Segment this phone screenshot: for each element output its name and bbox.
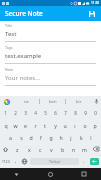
staticText: Your notes... [5,74,41,82]
staticText: Türkçe [49,159,61,164]
staticText: Secure Note [5,9,43,18]
staticText: n [72,146,76,153]
button[interactable]: ı [70,119,80,131]
button[interactable]: h [56,131,66,143]
button[interactable]: e [20,119,30,131]
button[interactable]: u [60,119,70,131]
staticText: v [50,146,53,153]
button[interactable]: j [66,131,76,143]
staticText: e [24,122,27,129]
button[interactable]: q [1,119,10,131]
button[interactable]: . [80,155,88,168]
button[interactable]: c [35,143,46,155]
staticText: ne [24,99,29,105]
staticText: 4 [34,110,37,116]
button[interactable]: ne [13,96,39,107]
staticText: o [83,122,87,129]
button[interactable]: Shift [0,143,11,155]
staticText: 7 [64,110,67,116]
staticText: t [44,122,46,129]
button[interactable]: 0 [90,107,100,119]
staticText: c [39,146,42,153]
button[interactable]: ben [40,96,65,107]
staticText: ?123 [2,159,10,164]
button[interactable]: y [50,119,60,131]
staticText: j [70,134,72,141]
button[interactable]: Home [33,168,67,180]
staticText: b [61,146,65,153]
button[interactable]: p [90,119,100,131]
staticText: . [83,158,85,165]
staticText: y [54,122,57,129]
staticText: 11:30 [91,1,100,5]
button[interactable]: Save note [86,8,97,19]
staticText: z [16,146,19,153]
staticText: h [59,134,63,141]
staticText: r [34,122,37,129]
button[interactable]: 9 [80,107,90,119]
button[interactable]: 3 [20,107,30,119]
staticText: x [28,146,31,153]
staticText: 3 [24,110,27,116]
button[interactable]: Enter [90,158,99,165]
staticText: k [80,134,83,141]
button[interactable]: 4 [30,107,40,119]
button[interactable]: a [5,131,16,143]
button[interactable]: v [46,143,57,155]
button[interactable]: t [40,119,50,131]
button[interactable]: x [23,143,35,155]
staticText: q [4,122,8,129]
staticText: l [90,134,92,141]
button[interactable]: Title [0,21,101,42]
button[interactable]: Google [0,96,13,107]
button[interactable]: z [11,143,23,155]
button[interactable]: r [30,119,40,131]
button[interactable]: Change language [20,155,29,168]
button[interactable]: 5 [40,107,50,119]
staticText: Note [5,67,14,72]
staticText: 8 [74,110,77,116]
staticText: 1 [4,110,7,116]
button[interactable]: bir [66,96,91,107]
button[interactable]: 7 [60,107,70,119]
button[interactable]: f [36,131,46,143]
staticText: ı [74,122,76,129]
staticText: a [9,134,12,141]
staticText: ben [49,99,57,105]
button[interactable]: Note [0,64,101,86]
staticText: m [82,146,87,153]
staticText: u [63,122,67,129]
staticText: g [49,134,53,141]
staticText: s [20,134,23,141]
staticText: bir [76,99,82,105]
button[interactable]: s [16,131,26,143]
staticText: Tags [5,45,13,50]
button[interactable]: Türkçe [30,158,79,165]
button[interactable]: ?123 [0,155,12,168]
staticText: Title [5,23,13,28]
button[interactable]: Voice input [91,96,101,107]
button[interactable]: Recent apps [67,168,101,180]
button[interactable]: Back [0,168,33,180]
button[interactable]: w [10,119,20,131]
staticText: 9 [84,110,87,116]
button[interactable]: 6 [50,107,60,119]
staticText: 6 [54,110,57,116]
staticText: , [15,158,17,165]
button[interactable]: o [80,119,90,131]
button[interactable]: g [46,131,56,143]
button[interactable]: Tags [0,42,101,64]
button[interactable]: k [76,131,86,143]
button[interactable]: b [57,143,68,155]
button[interactable]: l [86,131,96,143]
button[interactable]: 8 [70,107,80,119]
staticText: f [40,134,42,141]
button[interactable]: n [68,143,79,155]
button[interactable]: , [12,155,20,168]
button[interactable]: 2 [10,107,20,119]
staticText: 2 [14,110,17,116]
button[interactable]: d [26,131,36,143]
button[interactable]: Backspace [90,143,101,155]
button[interactable]: 1 [1,107,10,119]
button[interactable]: m [79,143,90,155]
